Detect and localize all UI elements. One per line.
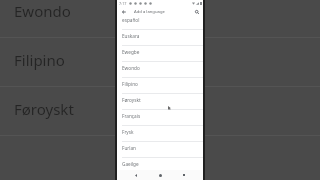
- button[interactable]: Furlan: [117, 142, 203, 158]
- staticText: Ewondo: [14, 1, 71, 21]
- button[interactable]: Euskara: [117, 30, 203, 46]
- staticText: Frysk: [122, 129, 134, 135]
- button[interactable]: Ewegbe: [117, 46, 203, 62]
- staticText: Français: [122, 113, 141, 119]
- button[interactable]: Frysk: [117, 126, 203, 142]
- staticText: Euskara: [122, 33, 140, 39]
- button[interactable]: Filipino: [117, 78, 203, 94]
- button[interactable]: Føroyskt: [117, 94, 203, 110]
- staticText: Føroyskt: [14, 99, 74, 119]
- button[interactable]: Gaeilge: [117, 158, 203, 170]
- button[interactable]: Back: [131, 170, 141, 180]
- staticText: Add a language: [134, 9, 165, 15]
- staticText: Filipino: [14, 50, 65, 70]
- button[interactable]: Recent apps: [179, 170, 189, 180]
- staticText: Ewondo: [122, 65, 140, 71]
- staticText: 7:17: [119, 1, 127, 6]
- staticText: Ewegbe: [122, 49, 140, 55]
- button[interactable]: Search: [192, 7, 201, 16]
- staticText: español: [122, 17, 140, 23]
- button[interactable]: Back: [119, 7, 128, 16]
- button[interactable]: Français: [117, 110, 203, 126]
- staticText: Føroyskt: [122, 97, 141, 103]
- staticText: Furlan: [122, 145, 137, 151]
- button[interactable]: español: [117, 16, 203, 30]
- staticText: Gaeilge: [122, 161, 139, 167]
- button[interactable]: Ewondo: [117, 62, 203, 78]
- button[interactable]: Home: [155, 170, 165, 180]
- staticText: Filipino: [122, 81, 138, 87]
